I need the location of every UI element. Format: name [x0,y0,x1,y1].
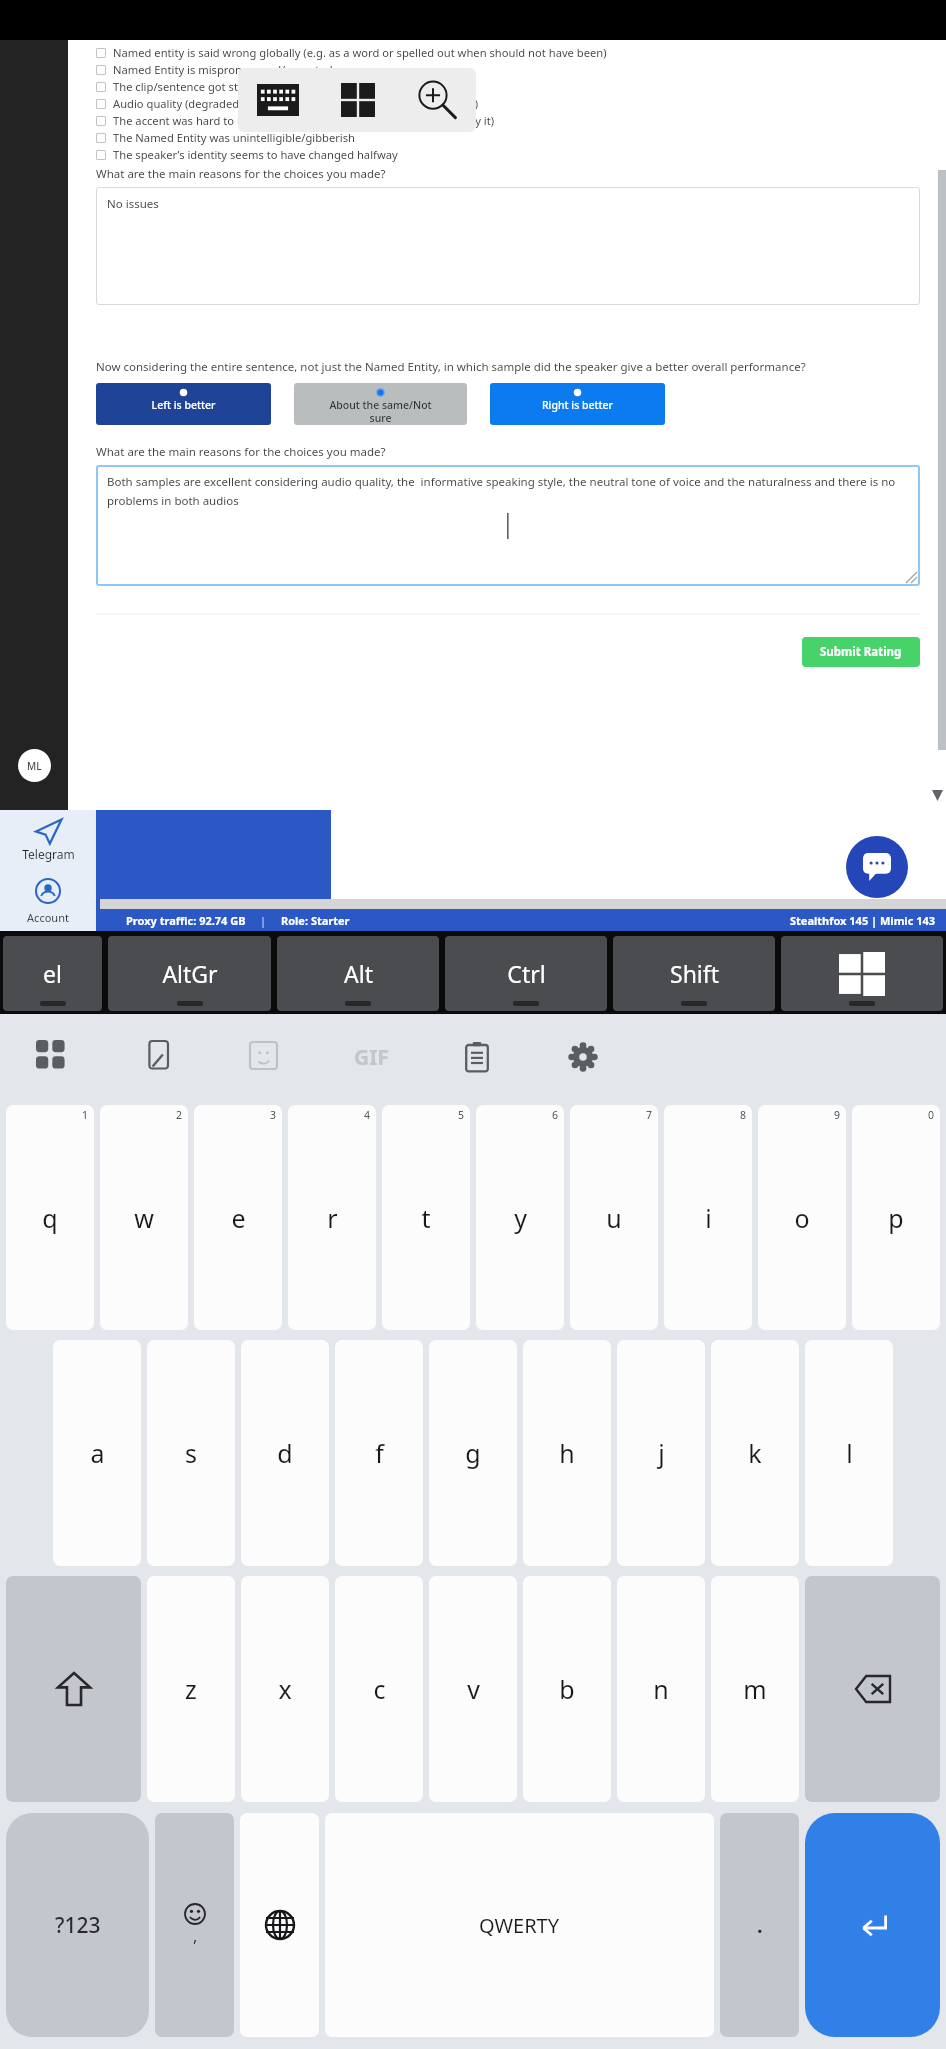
button[interactable]: j [617,1340,705,1566]
button[interactable]: q [6,1105,94,1330]
button[interactable]: k [711,1340,799,1566]
button[interactable]: r [288,1105,376,1330]
button[interactable]: Alt [277,936,439,1011]
button[interactable]: s [147,1340,235,1566]
staticText: b [559,1672,575,1706]
staticText: 1 [81,1108,88,1122]
button[interactable]: Zoom in [414,77,460,123]
staticText: The speaker’s identity seems to have cha… [113,147,398,162]
button[interactable]: The accent was hard to understand (not a… [96,112,920,129]
button[interactable]: l [805,1340,893,1566]
button[interactable]: el [3,936,102,1011]
button[interactable]: Right is better [490,383,665,425]
button[interactable]: d [241,1340,329,1566]
button[interactable]: QWERTY [325,1813,714,2037]
button[interactable]: w [100,1105,188,1330]
staticText: 4 [363,1108,370,1122]
button[interactable]: Submit Rating [802,637,920,667]
staticText: Audio quality (degraded, fuzzy, glitchy,… [113,96,479,111]
button[interactable]: ?123 [6,1813,149,2037]
staticText: m [743,1672,767,1706]
button[interactable]: x [241,1576,329,1802]
button[interactable]: Named Entity is mispronounced/repeated [96,61,920,78]
staticText: y [514,1201,527,1235]
staticText: What are the main reasons for the choice… [96,166,386,182]
button[interactable]: Settings [548,1022,618,1092]
staticText: n [653,1672,669,1706]
staticText: About the same/Not sure [294,398,467,425]
button[interactable]: Left is better [96,383,271,425]
staticText: Left is better [96,398,271,412]
button[interactable]: About the same/Not sure [294,383,467,425]
staticText: d [277,1436,293,1470]
button[interactable]: Windows [336,78,380,122]
button[interactable]: Audio quality (degraded, fuzzy, glitchy,… [96,95,920,112]
button[interactable]: Backspace [805,1576,940,1802]
staticText: k [748,1436,762,1470]
staticText: , [193,1925,198,1947]
button[interactable]: Named entity is said wrong globally (e.g… [96,44,920,61]
button[interactable]: The speaker’s identity seems to have cha… [96,146,920,163]
staticText: Telegram [22,846,75,862]
staticText: . [757,1912,763,1939]
button[interactable]: p [852,1105,940,1330]
staticText: s [185,1436,197,1470]
button[interactable]: a [53,1340,141,1566]
button[interactable]: Ctrl [445,936,607,1011]
button[interactable]: m [711,1576,799,1802]
button[interactable]: GIF [336,1022,406,1092]
staticText: z [185,1672,197,1706]
staticText: 2 [175,1108,182,1122]
staticText: r [327,1201,338,1235]
staticText: f [375,1436,384,1470]
button[interactable]: AltGr [108,936,271,1011]
button[interactable]: Show keyboard [254,81,302,119]
staticText: The Named Entity was unintelligible/gibb… [113,130,355,145]
button[interactable]: v [429,1576,517,1802]
button[interactable]: Both samples are excellent considering a… [96,465,920,586]
button[interactable]: i [664,1105,752,1330]
button[interactable]: t [382,1105,470,1330]
staticText: 3 [269,1108,276,1122]
button[interactable]: Open features [18,1022,88,1092]
staticText: Ctrl [507,958,546,989]
button[interactable]: e [194,1105,282,1330]
button[interactable]: . [720,1813,799,2037]
button[interactable]: n [617,1576,705,1802]
button[interactable]: New chat [846,836,908,898]
staticText: a [90,1436,105,1470]
button[interactable]: Change language [240,1813,319,2037]
button[interactable]: Emoji [155,1813,234,2037]
button[interactable]: The clip/sentence got stuck into a loop [96,78,920,95]
button[interactable]: The Named Entity was unintelligible/gibb… [96,129,920,146]
button[interactable]: o [758,1105,846,1330]
staticText: el [43,958,62,989]
staticText: 8 [739,1108,746,1122]
staticText: ML [27,759,42,773]
staticText: g [465,1436,481,1470]
button[interactable]: g [429,1340,517,1566]
button[interactable]: Shift [6,1576,141,1802]
staticText: o [794,1201,810,1235]
button[interactable]: f [335,1340,423,1566]
button[interactable]: Stickers [230,1022,300,1092]
staticText: QWERTY [479,1912,560,1939]
button[interactable]: No issues [96,187,920,305]
button[interactable]: h [523,1340,611,1566]
button[interactable]: Account ML [18,749,51,782]
button[interactable]: Enter [805,1813,940,2037]
button[interactable]: Shift [613,936,775,1011]
staticText: The accent was hard to understand (not a… [113,113,495,128]
staticText: Account [27,910,69,925]
button[interactable]: Handwriting [124,1022,194,1092]
staticText: Submit Rating [820,644,902,660]
button[interactable]: c [335,1576,423,1802]
button[interactable]: u [570,1105,658,1330]
button[interactable]: Clipboard [442,1022,512,1092]
button[interactable]: y [476,1105,564,1330]
button[interactable]: Windows key [781,936,943,1011]
button[interactable]: b [523,1576,611,1802]
button[interactable]: z [147,1576,235,1802]
staticText: 0 [927,1108,934,1122]
staticText: Named Entity is mispronounced/repeated [113,62,333,77]
